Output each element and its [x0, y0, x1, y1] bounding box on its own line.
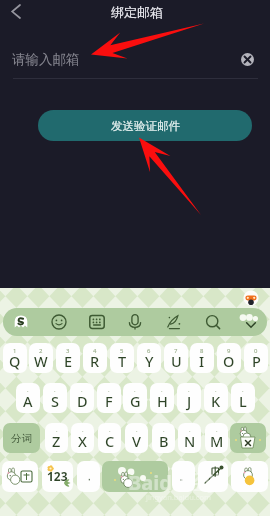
staticText: ·: [108, 387, 110, 395]
staticText: ·: [81, 387, 83, 395]
button[interactable]: Clear: [237, 49, 257, 69]
button[interactable]: ·: [177, 383, 201, 413]
staticText: Y: [145, 351, 154, 371]
staticText: ·: [215, 387, 217, 395]
staticText: ·: [82, 427, 84, 435]
button[interactable]: Symbols: [2, 461, 38, 492]
staticText: 5: [120, 347, 124, 355]
button[interactable]: Voice input: [118, 308, 152, 336]
button[interactable]: ·: [98, 423, 121, 453]
button[interactable]: 5: [110, 343, 134, 373]
staticText: ，: [84, 470, 94, 483]
staticText: ·: [54, 387, 56, 395]
button[interactable]: Back: [4, 0, 28, 24]
staticText: ·: [163, 427, 165, 435]
staticText: ·: [161, 387, 163, 395]
staticText: W: [34, 351, 48, 371]
button[interactable]: Handwriting: [157, 308, 191, 336]
staticText: 3: [66, 347, 70, 355]
staticText: T: [118, 351, 127, 371]
button[interactable]: ·: [152, 423, 175, 453]
button[interactable]: ·: [71, 423, 94, 453]
staticText: 1: [13, 347, 17, 355]
staticText: K: [211, 391, 221, 411]
staticText: A: [23, 391, 33, 411]
staticText: M: [210, 431, 224, 451]
button[interactable]: 0: [244, 343, 268, 373]
staticText: I: [199, 351, 205, 371]
button[interactable]: ，: [77, 461, 100, 492]
button[interactable]: 发送验证邮件: [38, 110, 252, 141]
staticText: 绑定邮箱: [111, 4, 163, 20]
button[interactable]: Numbers: [42, 461, 73, 492]
staticText: Q: [9, 351, 21, 371]
button[interactable]: Backspace: [230, 423, 266, 453]
button[interactable]: Space: [102, 461, 168, 492]
staticText: O: [223, 351, 235, 371]
button[interactable]: 3: [56, 343, 80, 373]
staticText: 8: [200, 347, 204, 355]
button[interactable]: 7: [164, 343, 188, 373]
button[interactable]: ·: [123, 383, 147, 413]
staticText: 发送验证邮件: [111, 119, 180, 133]
staticText: B: [159, 431, 169, 451]
button[interactable]: 6: [137, 343, 161, 373]
staticText: 。: [179, 470, 189, 483]
staticText: ·: [189, 427, 191, 435]
button[interactable]: ·: [43, 383, 67, 413]
button[interactable]: 9: [217, 343, 241, 373]
button[interactable]: 1: [3, 343, 27, 373]
staticText: 6: [147, 347, 151, 355]
button[interactable]: Sogou input: [4, 308, 38, 336]
button[interactable]: ·: [204, 383, 228, 413]
staticText: E: [64, 351, 73, 371]
button[interactable]: ·: [178, 423, 201, 453]
button[interactable]: Enter: [231, 461, 268, 492]
staticText: X: [78, 431, 87, 451]
button[interactable]: Chinese / English: [198, 461, 228, 492]
staticText: C: [105, 431, 115, 451]
button[interactable]: Keyboard: [80, 308, 114, 336]
staticText: J: [187, 391, 192, 411]
button[interactable]: Search: [196, 308, 230, 336]
staticText: 123: [47, 468, 68, 484]
button[interactable]: ·: [125, 423, 148, 453]
button[interactable]: 分词: [3, 423, 40, 453]
staticText: ·: [109, 427, 111, 435]
staticText: ·: [27, 387, 29, 395]
staticText: ·: [56, 427, 58, 435]
button[interactable]: 4: [83, 343, 107, 373]
staticText: ·: [242, 387, 244, 395]
staticText: D: [77, 391, 88, 411]
staticText: ·: [188, 387, 190, 395]
button[interactable]: 。: [172, 461, 195, 492]
staticText: ·: [216, 427, 218, 435]
staticText: ·: [136, 427, 138, 435]
staticText: L: [239, 391, 247, 411]
button[interactable]: ·: [45, 423, 68, 453]
staticText: 2: [39, 347, 43, 355]
button[interactable]: ·: [150, 383, 174, 413]
button[interactable]: More: [234, 308, 268, 336]
button[interactable]: ·: [205, 423, 228, 453]
staticText: V: [132, 431, 141, 451]
staticText: S: [51, 391, 59, 411]
staticText: 9: [227, 347, 231, 355]
staticText: 7: [174, 347, 178, 355]
staticText: R: [90, 351, 100, 371]
staticText: G: [130, 391, 141, 411]
button[interactable]: ·: [97, 383, 121, 413]
button[interactable]: Emoji: [42, 308, 76, 336]
staticText: Z: [52, 431, 61, 451]
staticText: 0: [254, 347, 258, 355]
button[interactable]: ·: [231, 383, 255, 413]
button[interactable]: 2: [29, 343, 53, 373]
staticText: jingyan.baidu.com: [146, 492, 211, 502]
staticText: Baidu经验: [128, 469, 225, 496]
staticText: P: [252, 351, 261, 371]
staticText: U: [171, 351, 182, 371]
button[interactable]: ·: [16, 383, 40, 413]
staticText: 请输入邮箱: [12, 51, 80, 68]
button[interactable]: ·: [70, 383, 94, 413]
button[interactable]: 8: [190, 343, 214, 373]
